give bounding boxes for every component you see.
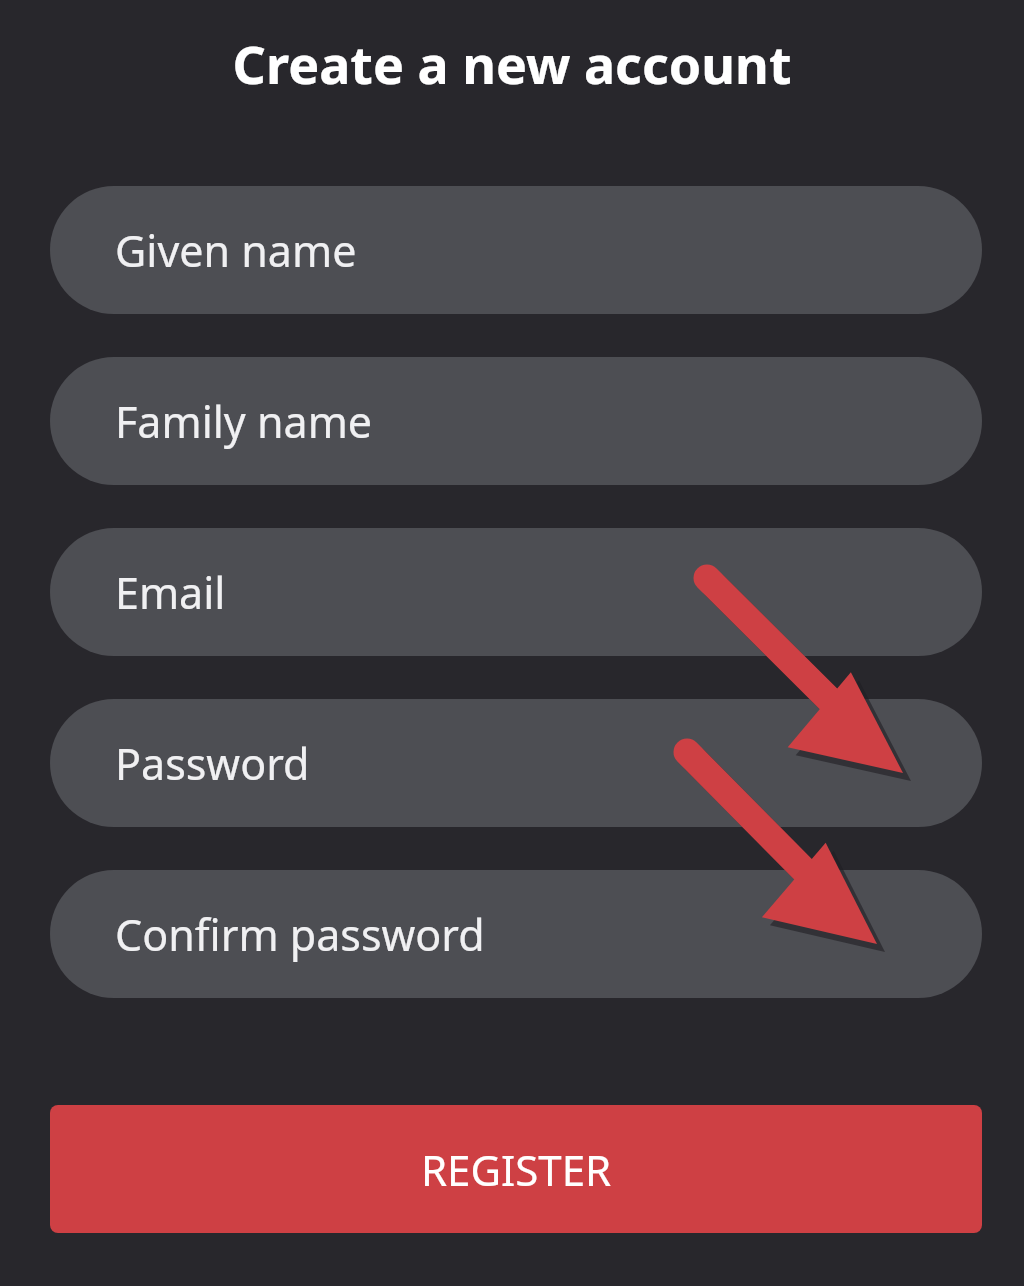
staticText: Email xyxy=(115,563,226,622)
staticText: REGISTER xyxy=(421,1141,612,1198)
button[interactable]: REGISTER xyxy=(50,1105,982,1233)
button[interactable]: Given name xyxy=(50,186,982,314)
staticText: Password xyxy=(115,734,310,793)
other: Annotation arrows xyxy=(0,0,1024,1286)
button[interactable]: Confirm password xyxy=(50,870,982,998)
staticText: Confirm password xyxy=(115,905,485,964)
staticText: Given name xyxy=(115,221,357,280)
button[interactable]: Family name xyxy=(50,357,982,485)
button[interactable]: Email xyxy=(50,528,982,656)
staticText: Create a new account xyxy=(0,28,1024,99)
button[interactable]: Password xyxy=(50,699,982,827)
staticText: Family name xyxy=(115,392,373,451)
